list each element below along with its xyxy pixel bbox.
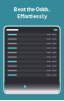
button[interactable]: Odds row [6, 64, 58, 68]
button[interactable]: Odds row [6, 42, 58, 45]
button[interactable]: Odds row [6, 60, 58, 63]
staticText: Effortlessly [17, 13, 47, 20]
button[interactable]: Odds row [6, 46, 58, 50]
button[interactable]: Odds row [6, 33, 58, 36]
button[interactable]: Odds row [6, 69, 58, 72]
button[interactable]: Odds row [6, 51, 58, 54]
button[interactable]: Odds row [6, 73, 58, 77]
staticText: Beat the Odds, [13, 6, 50, 13]
button[interactable]: Odds row [6, 55, 58, 59]
button[interactable]: Odds row [6, 37, 58, 41]
